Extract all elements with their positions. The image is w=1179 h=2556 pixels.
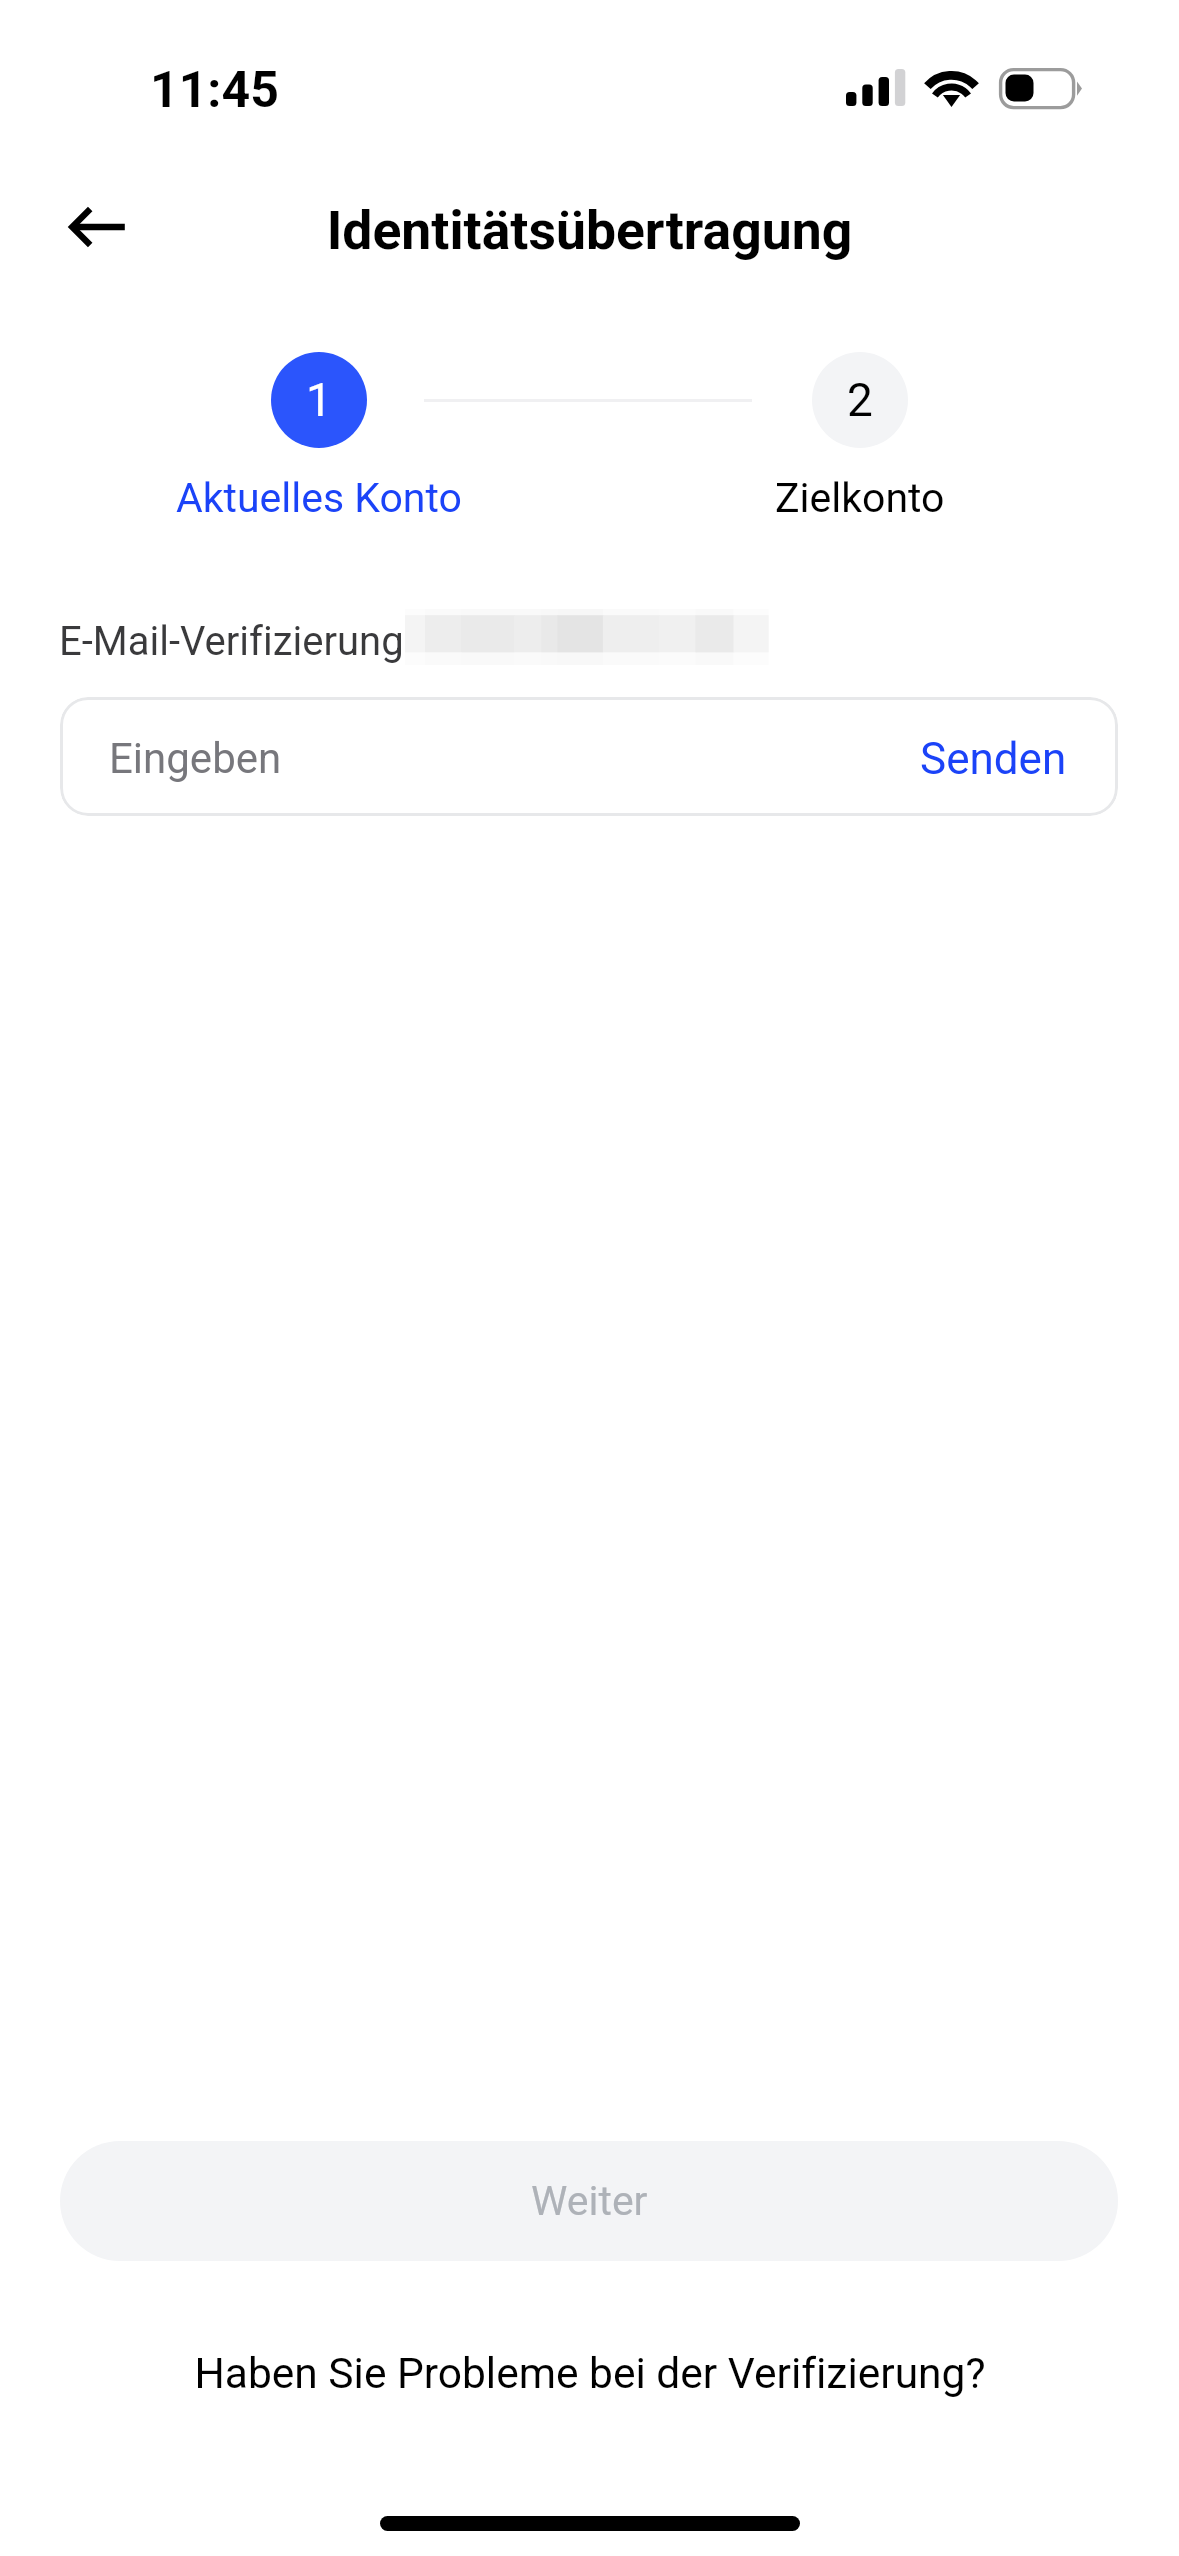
staticText: Zielkonto [775,474,945,522]
button[interactable]: 1 [104,352,534,522]
button[interactable]: Senden [869,711,1118,807]
staticText: 11:45 [150,61,279,120]
button[interactable]: Back [39,181,157,273]
button[interactable]: Haben Sie Probleme bei der Verifizierung… [178,2335,1002,2413]
staticText: E-Mail-Verifizierung [59,618,404,665]
staticText: Eingeben [109,734,282,783]
staticText: Senden [920,733,1067,785]
button[interactable]: Eingeben [60,697,1118,816]
staticText: Weiter [531,2177,648,2225]
button[interactable]: Weiter [60,2141,1118,2261]
button[interactable]: 2 [645,352,1075,522]
staticText: Haben Sie Probleme bei der Verifizierung… [194,2349,986,2399]
staticText: Aktuelles Konto [176,474,462,522]
staticText: Identitätsübertragung [0,199,1179,262]
staticText: 1 [306,373,332,427]
staticText: 2 [847,373,873,427]
